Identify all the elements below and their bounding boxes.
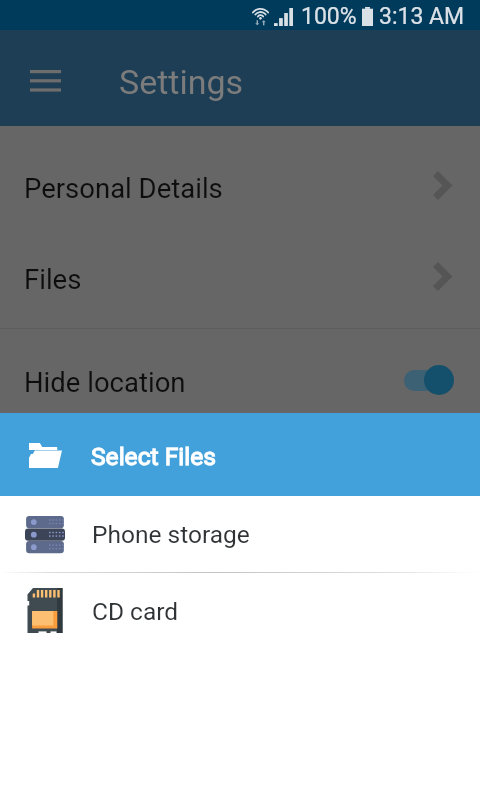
other: Battery — [362, 7, 373, 26]
button[interactable]: Open navigation menu — [21, 58, 69, 102]
staticText: 100% — [301, 3, 357, 30]
button[interactable]: Files — [0, 231, 480, 327]
button[interactable]: Phone storage — [0, 496, 480, 572]
staticText: CD card — [92, 597, 179, 626]
button[interactable]: Personal Details — [0, 135, 480, 241]
staticText: Files — [24, 263, 82, 295]
staticText: Hide location — [24, 366, 186, 398]
button[interactable]: Hide location — [0, 340, 480, 424]
other: Mobile signal — [274, 8, 293, 26]
staticText: Settings — [119, 62, 244, 102]
other: Wi-Fi — [251, 8, 270, 25]
staticText: 3:13 AM — [379, 3, 465, 30]
button[interactable]: Hide location, on — [403, 364, 453, 396]
staticText: Personal Details — [24, 172, 223, 204]
button[interactable]: CD card — [0, 573, 480, 649]
button[interactable]: Select Files — [0, 413, 480, 496]
staticText: Select Files — [91, 442, 216, 471]
staticText: Phone storage — [92, 520, 250, 549]
